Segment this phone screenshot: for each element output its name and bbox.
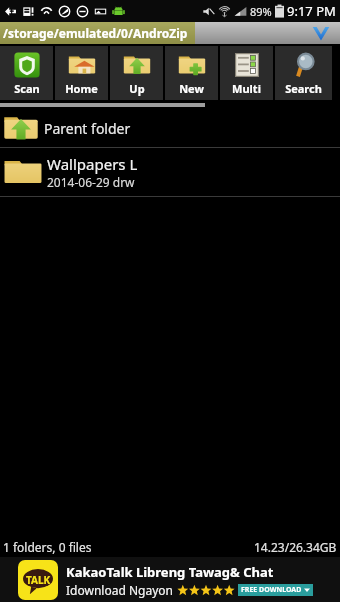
button[interactable]: New bbox=[165, 46, 218, 100]
button[interactable]: Wallpapers L bbox=[0, 148, 340, 196]
button[interactable]: Search bbox=[275, 46, 332, 100]
staticText: 14.23/26.34GB bbox=[254, 539, 337, 555]
staticText: Up bbox=[129, 81, 145, 96]
staticText: New bbox=[179, 81, 204, 96]
button[interactable]: TALK bbox=[0, 557, 340, 602]
staticText: KakaoTalk Libreng Tawag& Chat bbox=[66, 563, 274, 581]
button[interactable]: Parent folder bbox=[0, 109, 340, 147]
staticText: 1 folders, 0 files bbox=[3, 539, 92, 555]
staticText: Parent folder bbox=[44, 119, 131, 138]
button[interactable]: Multi bbox=[220, 46, 273, 100]
staticText: Idownload Ngayon bbox=[66, 582, 173, 598]
button[interactable]: /storage/emulated/0/AndroZip bbox=[0, 22, 340, 44]
staticText: Scan bbox=[14, 81, 40, 96]
other: App logo bbox=[312, 24, 330, 42]
staticText: FREE DOWNLOAD bbox=[241, 585, 302, 595]
staticText: 2014-06-29 drw bbox=[47, 174, 135, 190]
staticText: Home bbox=[65, 81, 98, 96]
staticText: TALK bbox=[26, 573, 51, 587]
button[interactable]: Up bbox=[110, 46, 163, 100]
staticText: 89% bbox=[250, 4, 272, 19]
staticText: Search bbox=[285, 81, 322, 96]
staticText: 9:17 PM bbox=[287, 2, 336, 20]
staticText: Multi bbox=[232, 81, 261, 96]
staticText: /storage/emulated/0/AndroZip bbox=[3, 25, 188, 41]
button[interactable]: Scan bbox=[0, 46, 53, 100]
button[interactable]: Home bbox=[55, 46, 108, 100]
staticText: Wallpapers L bbox=[47, 154, 138, 174]
